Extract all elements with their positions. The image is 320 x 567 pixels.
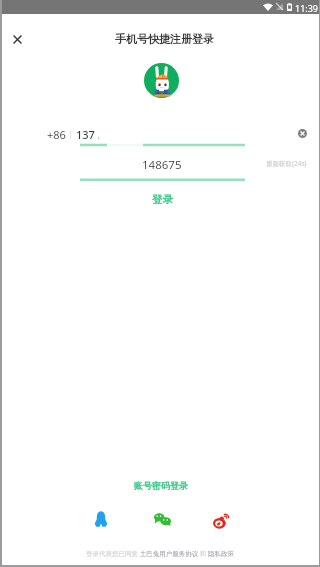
button[interactable]: 重新获取(24s) <box>266 153 307 173</box>
staticText: 137 <box>76 127 95 142</box>
button[interactable]: 账号密码登录 <box>2 476 319 494</box>
button[interactable]: Clear <box>295 126 309 140</box>
staticText: 登录 <box>152 193 173 206</box>
staticText: 11:39 <box>295 2 319 14</box>
staticText: 148675 <box>142 157 182 173</box>
staticText: +86 <box>47 127 66 142</box>
button[interactable]: WeChat login <box>148 505 176 533</box>
staticText: 手机号快捷注册登录 <box>115 32 214 46</box>
staticText: 账号密码登录 <box>134 480 188 491</box>
staticText: 登录代表您已同意 土巴兔用户服务协议 和 隐私政策 <box>86 549 235 558</box>
staticText: . <box>97 127 100 142</box>
button[interactable]: Close <box>6 28 28 50</box>
button[interactable]: QQ login <box>87 505 115 533</box>
button[interactable]: 登录 <box>4 191 320 207</box>
staticText: 重新获取(24s) <box>266 159 307 168</box>
button[interactable]: Weibo login <box>207 507 235 535</box>
